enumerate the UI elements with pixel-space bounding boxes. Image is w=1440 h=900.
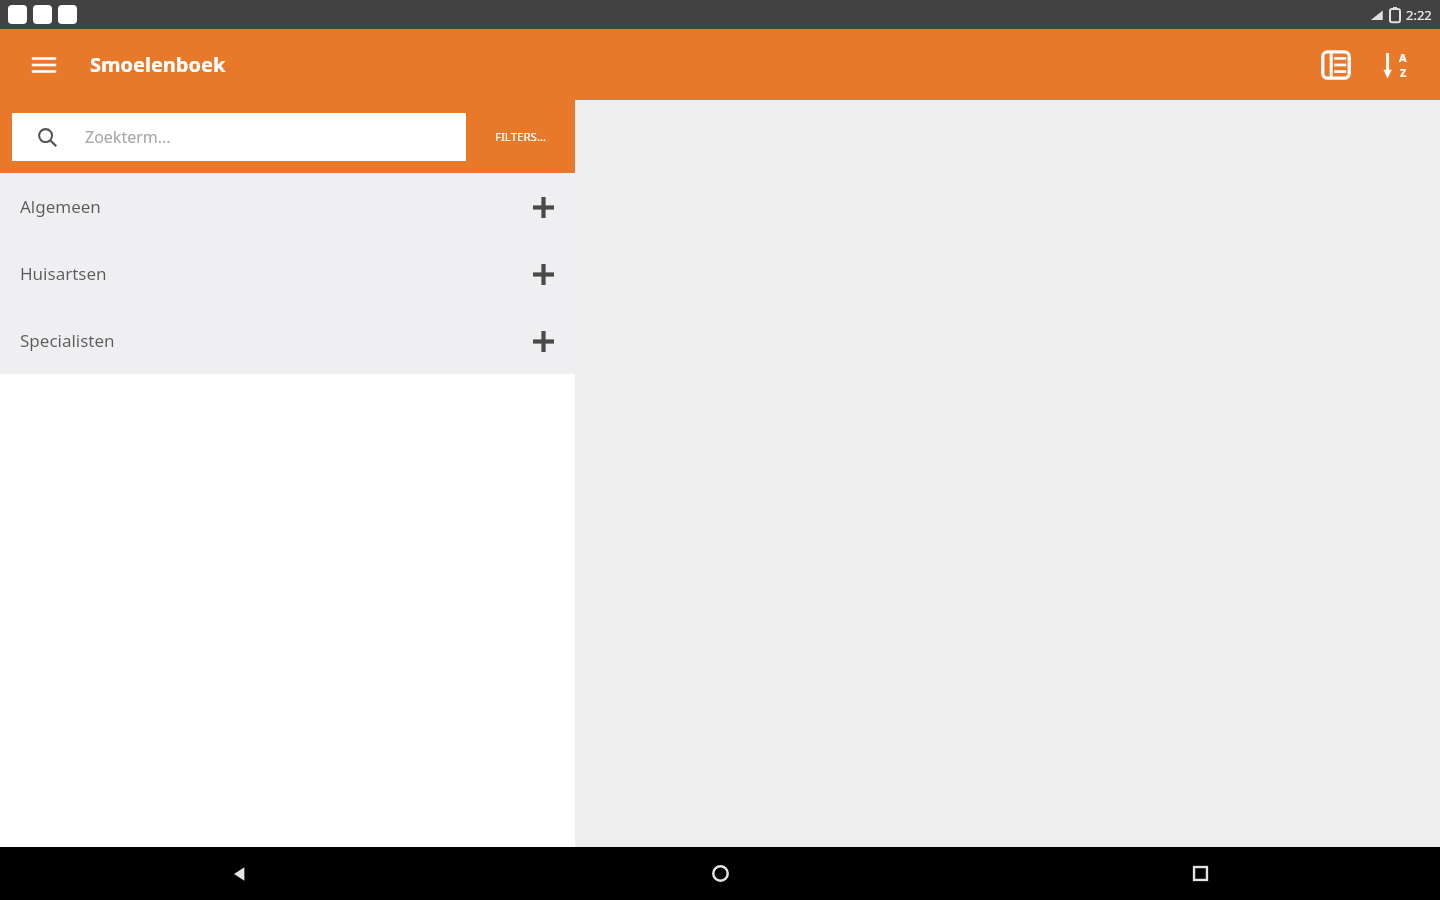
button[interactable]: FILTERS... xyxy=(466,100,575,173)
button[interactable]: Recent apps xyxy=(960,847,1440,900)
staticText: Zoekterm... xyxy=(85,126,171,148)
button[interactable]: Specialisten xyxy=(0,307,575,374)
staticText: Algemeen xyxy=(20,195,101,218)
button[interactable]: Zoekterm... xyxy=(12,113,466,161)
staticText: A xyxy=(1399,50,1407,65)
staticText: Smoelenboek xyxy=(90,51,226,78)
staticText: Z xyxy=(1400,65,1407,80)
button[interactable]: Sort A to Z xyxy=(1370,39,1422,91)
button[interactable]: Algemeen xyxy=(0,173,575,240)
button[interactable]: Back xyxy=(0,847,480,900)
staticText: Huisartsen xyxy=(20,262,107,285)
staticText: FILTERS... xyxy=(495,129,547,145)
button[interactable]: Open navigation menu xyxy=(22,43,66,87)
button[interactable]: Home xyxy=(480,847,960,900)
staticText: 2:22 xyxy=(1406,6,1432,24)
button[interactable]: Change view xyxy=(1310,39,1362,91)
button[interactable]: Huisartsen xyxy=(0,240,575,307)
staticText: Specialisten xyxy=(20,329,115,352)
